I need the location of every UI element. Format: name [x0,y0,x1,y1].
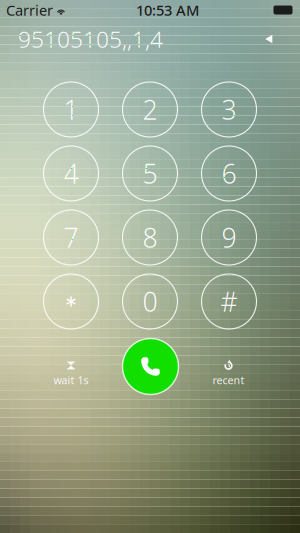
staticText: Carrier [6,0,53,20]
button[interactable]: Star [43,274,98,329]
button[interactable]: 1 [43,82,98,137]
staticText: 9 [221,220,236,255]
button[interactable]: Delete [256,26,282,52]
staticText: 95105105,,1,4 [18,24,163,54]
staticText: wait 1s [53,373,88,387]
button[interactable]: 5 [122,146,177,201]
staticText: 2 [142,92,157,127]
staticText: 3 [221,92,236,127]
button[interactable]: 7 [43,210,98,265]
staticText: 1 [63,92,78,127]
staticText: 6 [221,156,236,191]
button[interactable]: 2 [122,82,177,137]
button[interactable]: 6 [201,146,256,201]
button[interactable]: 8 [122,210,177,265]
button[interactable]: recent [195,358,261,390]
button[interactable]: 9 [201,210,256,265]
button[interactable]: # [201,274,256,329]
button[interactable]: 4 [43,146,98,201]
staticText: 4 [63,156,78,191]
button[interactable]: Call [121,337,179,395]
staticText: 0 [142,284,157,319]
staticText: 8 [142,220,157,255]
staticText: 7 [63,220,78,255]
staticText: 5 [142,156,157,191]
button[interactable]: 3 [201,82,256,137]
staticText: 10:53 AM [136,0,199,20]
staticText: recent [212,373,244,387]
button[interactable]: wait 1s [38,358,104,390]
button[interactable]: 0 [122,274,177,329]
staticText: # [220,284,237,319]
